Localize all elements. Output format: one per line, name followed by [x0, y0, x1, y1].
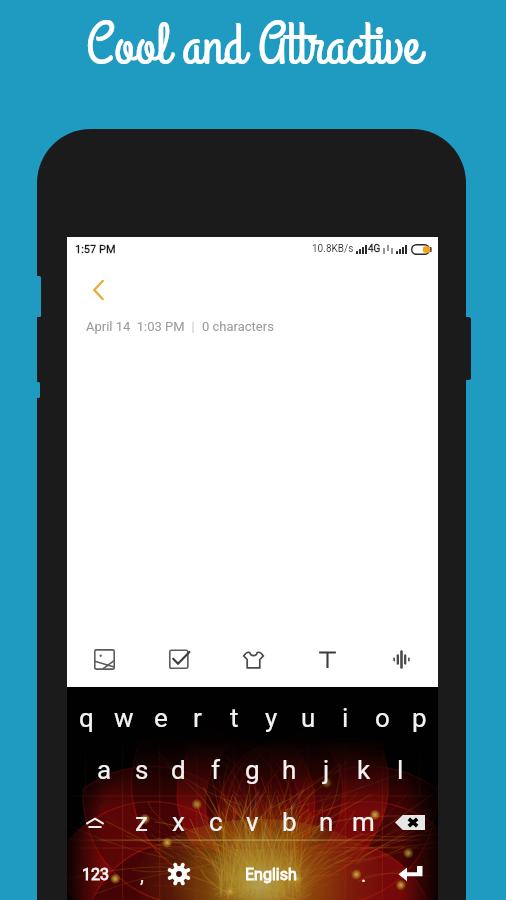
staticText: c	[209, 807, 223, 837]
button[interactable]: d	[160, 744, 197, 796]
button[interactable]: e	[142, 692, 179, 744]
staticText: g	[245, 755, 260, 785]
button[interactable]: q	[67, 692, 105, 744]
button[interactable]: z	[123, 796, 160, 848]
button[interactable]: s	[123, 744, 160, 796]
button[interactable]: Enter	[382, 848, 438, 900]
button[interactable]: u	[290, 692, 327, 744]
button[interactable]: Shift	[67, 796, 123, 848]
staticText: v	[246, 807, 259, 837]
button[interactable]: c	[197, 796, 234, 848]
staticText: w	[114, 703, 134, 733]
button[interactable]: o	[364, 692, 401, 744]
staticText: a	[97, 755, 112, 785]
staticText: 1:57 PM	[75, 243, 116, 256]
button[interactable]: Sticker	[216, 642, 290, 677]
staticText: y	[265, 703, 278, 733]
staticText: m	[352, 807, 375, 837]
button[interactable]: English	[197, 848, 345, 900]
button[interactable]: g	[234, 744, 271, 796]
staticText: r	[193, 703, 202, 733]
staticText: h	[282, 755, 297, 785]
staticText: .	[361, 863, 367, 886]
staticText: April 14 1:03 PM	[86, 319, 185, 334]
staticText: b	[282, 807, 297, 837]
staticText: j	[323, 755, 330, 785]
staticText: n	[319, 807, 334, 837]
staticText: o	[375, 703, 390, 733]
button[interactable]: ,	[123, 848, 160, 900]
button[interactable]: Keyboard settings	[160, 848, 197, 900]
staticText: 123	[82, 865, 109, 884]
button[interactable]: l	[382, 744, 419, 796]
staticText: s	[135, 755, 149, 785]
button[interactable]: w	[105, 692, 142, 744]
staticText: 4G	[368, 243, 381, 255]
button[interactable]: n	[308, 796, 345, 848]
staticText: p	[412, 703, 427, 733]
staticText: x	[172, 807, 185, 837]
staticText: u	[301, 703, 316, 733]
button[interactable]: Text style	[290, 642, 364, 677]
staticText: d	[171, 755, 186, 785]
staticText: t	[230, 703, 239, 733]
button[interactable]: b	[271, 796, 308, 848]
button[interactable]: p	[401, 692, 438, 744]
button[interactable]: f	[197, 744, 234, 796]
button[interactable]: i	[327, 692, 364, 744]
button[interactable]: Backspace	[382, 796, 438, 848]
button[interactable]: t	[216, 692, 253, 744]
button[interactable]: v	[234, 796, 271, 848]
button[interactable]: k	[345, 744, 382, 796]
button[interactable]: x	[160, 796, 197, 848]
staticText: z	[135, 807, 148, 837]
button[interactable]: a	[86, 744, 123, 796]
button[interactable]: 123	[67, 848, 123, 900]
button[interactable]: h	[271, 744, 308, 796]
button[interactable]: Back	[82, 274, 114, 306]
staticText: e	[154, 703, 168, 733]
button[interactable]: r	[179, 692, 216, 744]
button[interactable]: .	[345, 848, 382, 900]
staticText: English	[245, 865, 297, 884]
staticText: |	[185, 319, 202, 334]
button[interactable]: Checklist	[142, 642, 216, 677]
staticText: Cool and Attractive	[86, 7, 421, 86]
staticText: i	[342, 703, 349, 733]
staticText: k	[357, 755, 371, 785]
button[interactable]: Voice note	[364, 642, 438, 677]
staticText: ,	[140, 863, 144, 886]
button[interactable]: m	[345, 796, 382, 848]
staticText: q	[79, 703, 94, 733]
staticText: 10.8KB/s	[312, 243, 354, 255]
staticText: f	[211, 755, 221, 785]
staticText: l	[397, 755, 404, 785]
button[interactable]: j	[308, 744, 345, 796]
button[interactable]: Insert image	[67, 642, 142, 677]
staticText: 0 characters	[202, 319, 274, 334]
button[interactable]: y	[253, 692, 290, 744]
